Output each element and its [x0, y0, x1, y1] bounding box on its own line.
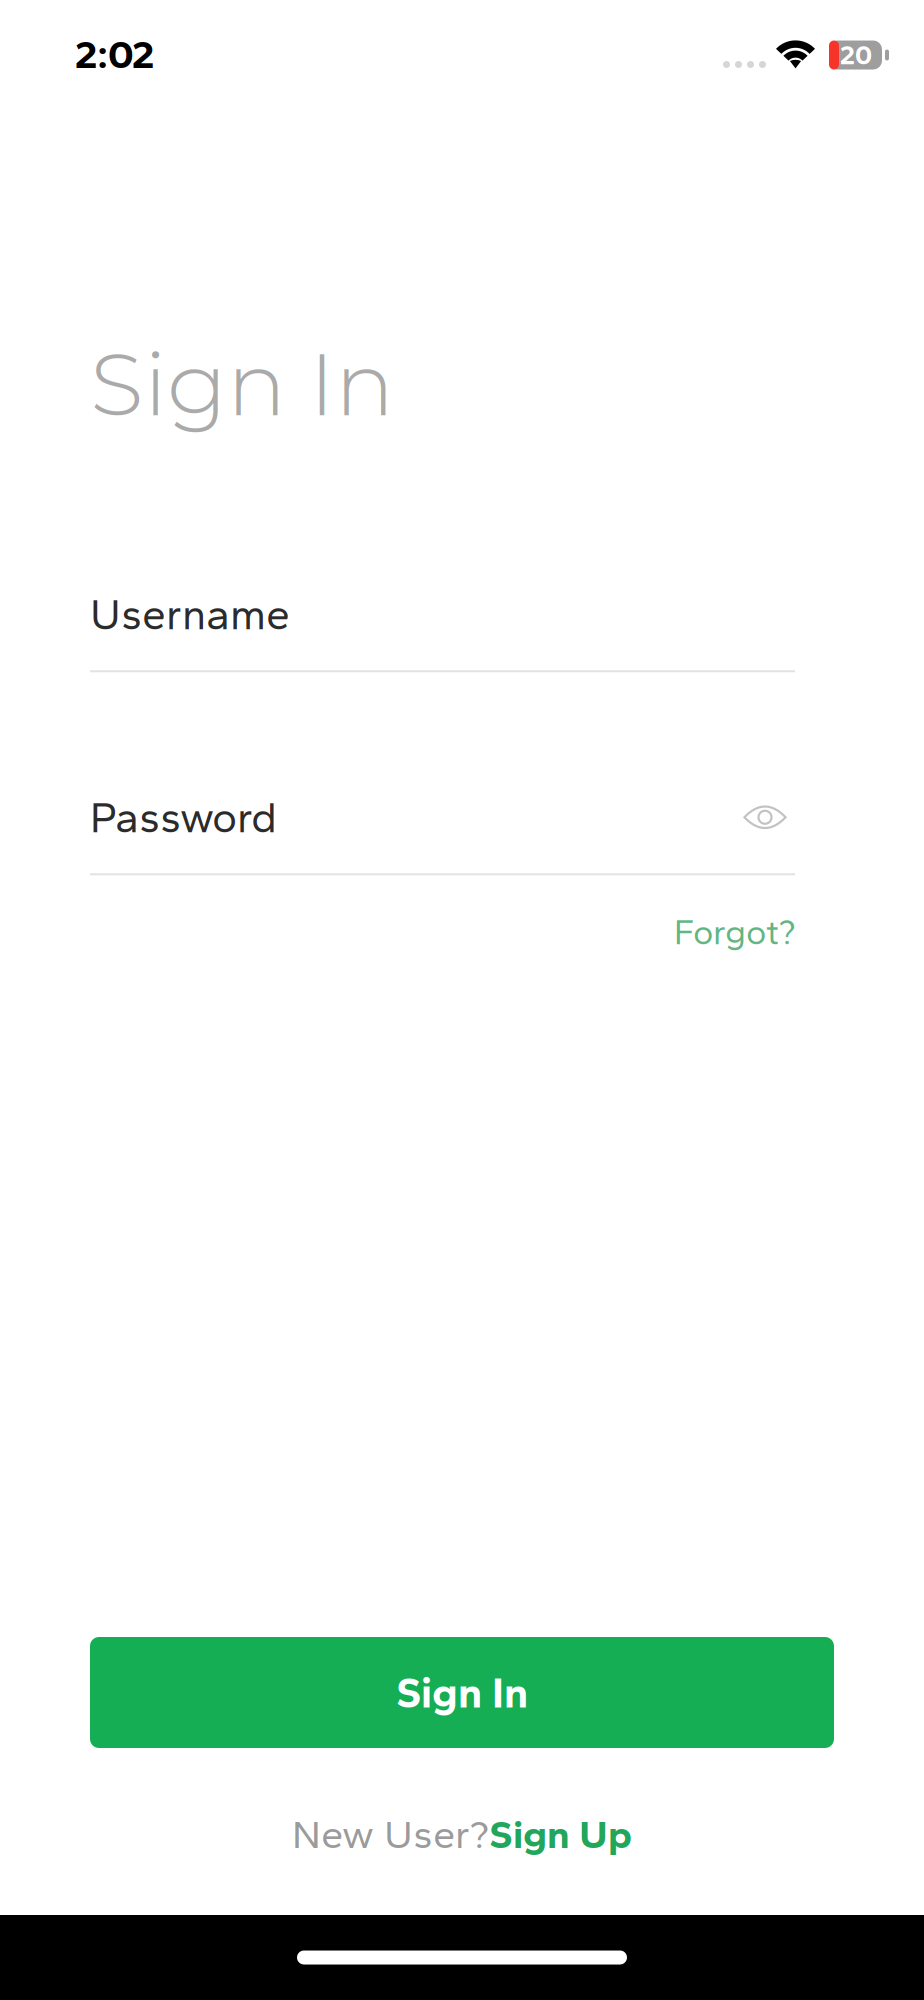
button[interactable]: New User?	[292, 1810, 632, 1858]
staticText: Username	[90, 589, 290, 640]
button[interactable]: Forgot?	[674, 911, 795, 953]
button[interactable]: Show password	[735, 791, 795, 843]
staticText: New User?	[292, 1810, 489, 1858]
staticText: Forgot?	[674, 911, 795, 953]
staticText: Sign In	[396, 1667, 528, 1718]
staticText: Sign In	[90, 330, 394, 437]
staticText: Sign Up	[489, 1810, 632, 1858]
staticText: Password	[90, 792, 277, 843]
button[interactable]: Sign In	[90, 1637, 834, 1748]
staticText: 20	[840, 39, 872, 71]
staticText: 2:02	[75, 30, 154, 78]
